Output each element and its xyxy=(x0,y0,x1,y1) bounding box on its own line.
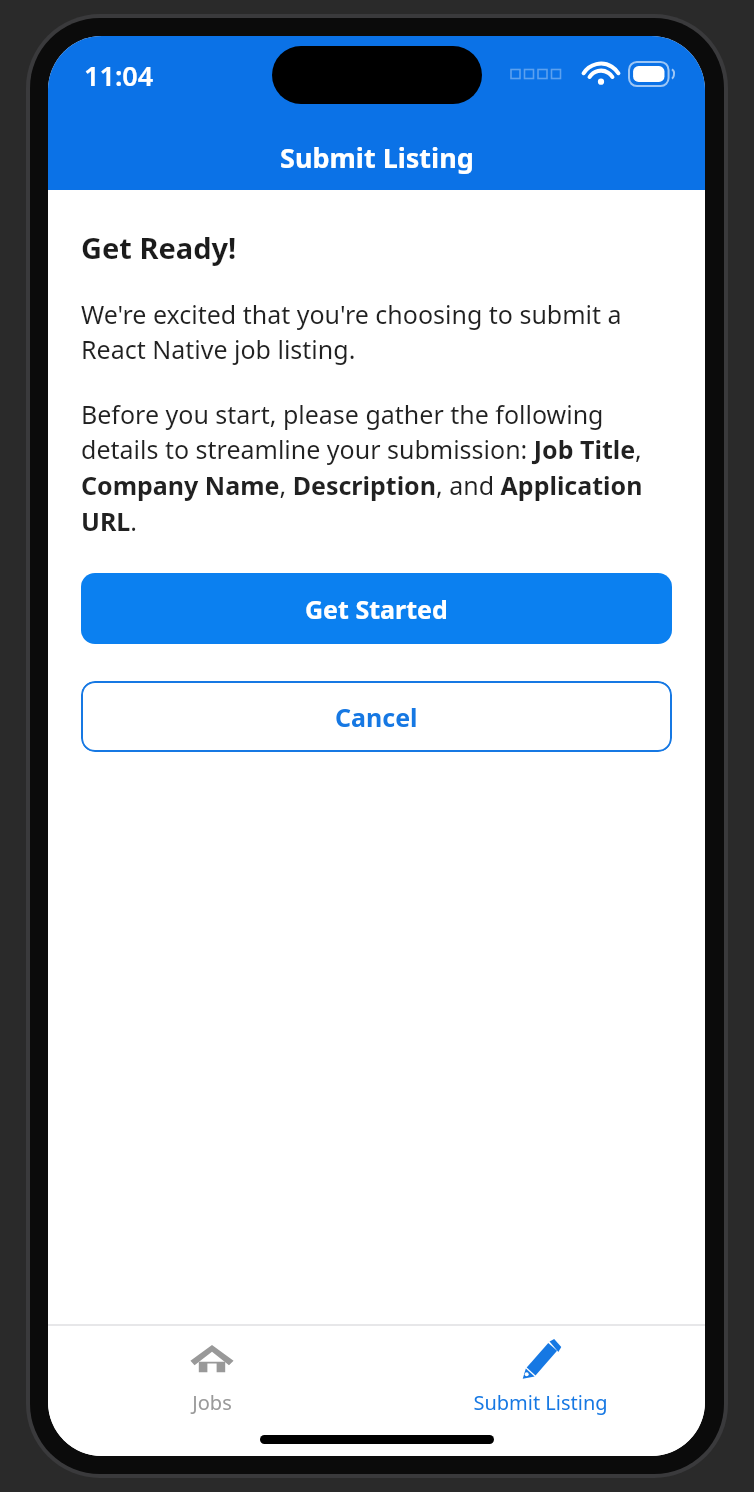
button[interactable]: Get Started xyxy=(81,573,672,644)
staticText: Jobs xyxy=(192,1389,232,1416)
staticText: Cancel xyxy=(335,700,418,734)
button[interactable]: Jobs xyxy=(48,1331,376,1422)
staticText: Before you start, please gather the foll… xyxy=(81,397,672,539)
staticText: Submit Listing xyxy=(473,1389,608,1416)
staticText: We're excited that you're choosing to su… xyxy=(81,297,672,367)
staticText: Get Ready! xyxy=(81,228,237,267)
staticText: 11:04 xyxy=(84,57,154,94)
staticText: Submit Listing xyxy=(280,139,474,176)
staticText: Get Started xyxy=(305,592,448,626)
button[interactable]: Cancel xyxy=(81,681,672,752)
button[interactable]: Submit Listing xyxy=(376,1331,705,1422)
